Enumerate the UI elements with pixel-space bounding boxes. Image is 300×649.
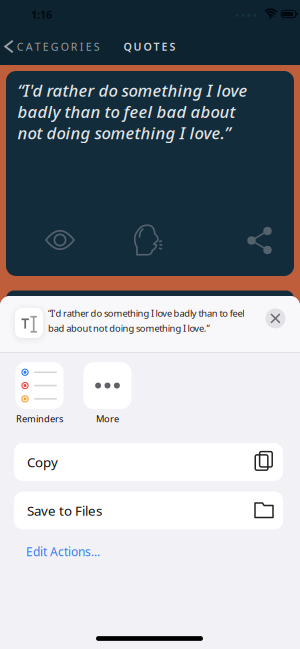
- button[interactable]: Share: [246, 227, 273, 254]
- button[interactable]: Speak: [133, 224, 162, 256]
- staticText: More: [96, 413, 119, 425]
- staticText: Edit Actions...: [26, 543, 100, 559]
- staticText: Reminders: [16, 413, 63, 425]
- button[interactable]: Copy: [14, 443, 283, 481]
- button[interactable]: Reminders: [15, 362, 63, 425]
- button[interactable]: C A T E G O R I E S: [5, 34, 105, 58]
- staticText: 1:16: [31, 7, 52, 22]
- staticText: Q U O T E S: [123, 39, 175, 54]
- staticText: “I'd rather do something I love badly th…: [48, 307, 244, 334]
- button[interactable]: Save to Files: [14, 491, 283, 529]
- button[interactable]: Edit Actions...: [26, 543, 146, 559]
- staticText: Save to Files: [27, 502, 102, 519]
- button[interactable]: More: [83, 362, 131, 425]
- button[interactable]: View: [42, 226, 78, 254]
- staticText: Copy: [27, 453, 58, 471]
- button[interactable]: Close: [265, 308, 285, 328]
- staticText: “I'd rather do something I love badly th…: [17, 79, 247, 143]
- staticText: C A T E G O R I E S: [17, 39, 100, 54]
